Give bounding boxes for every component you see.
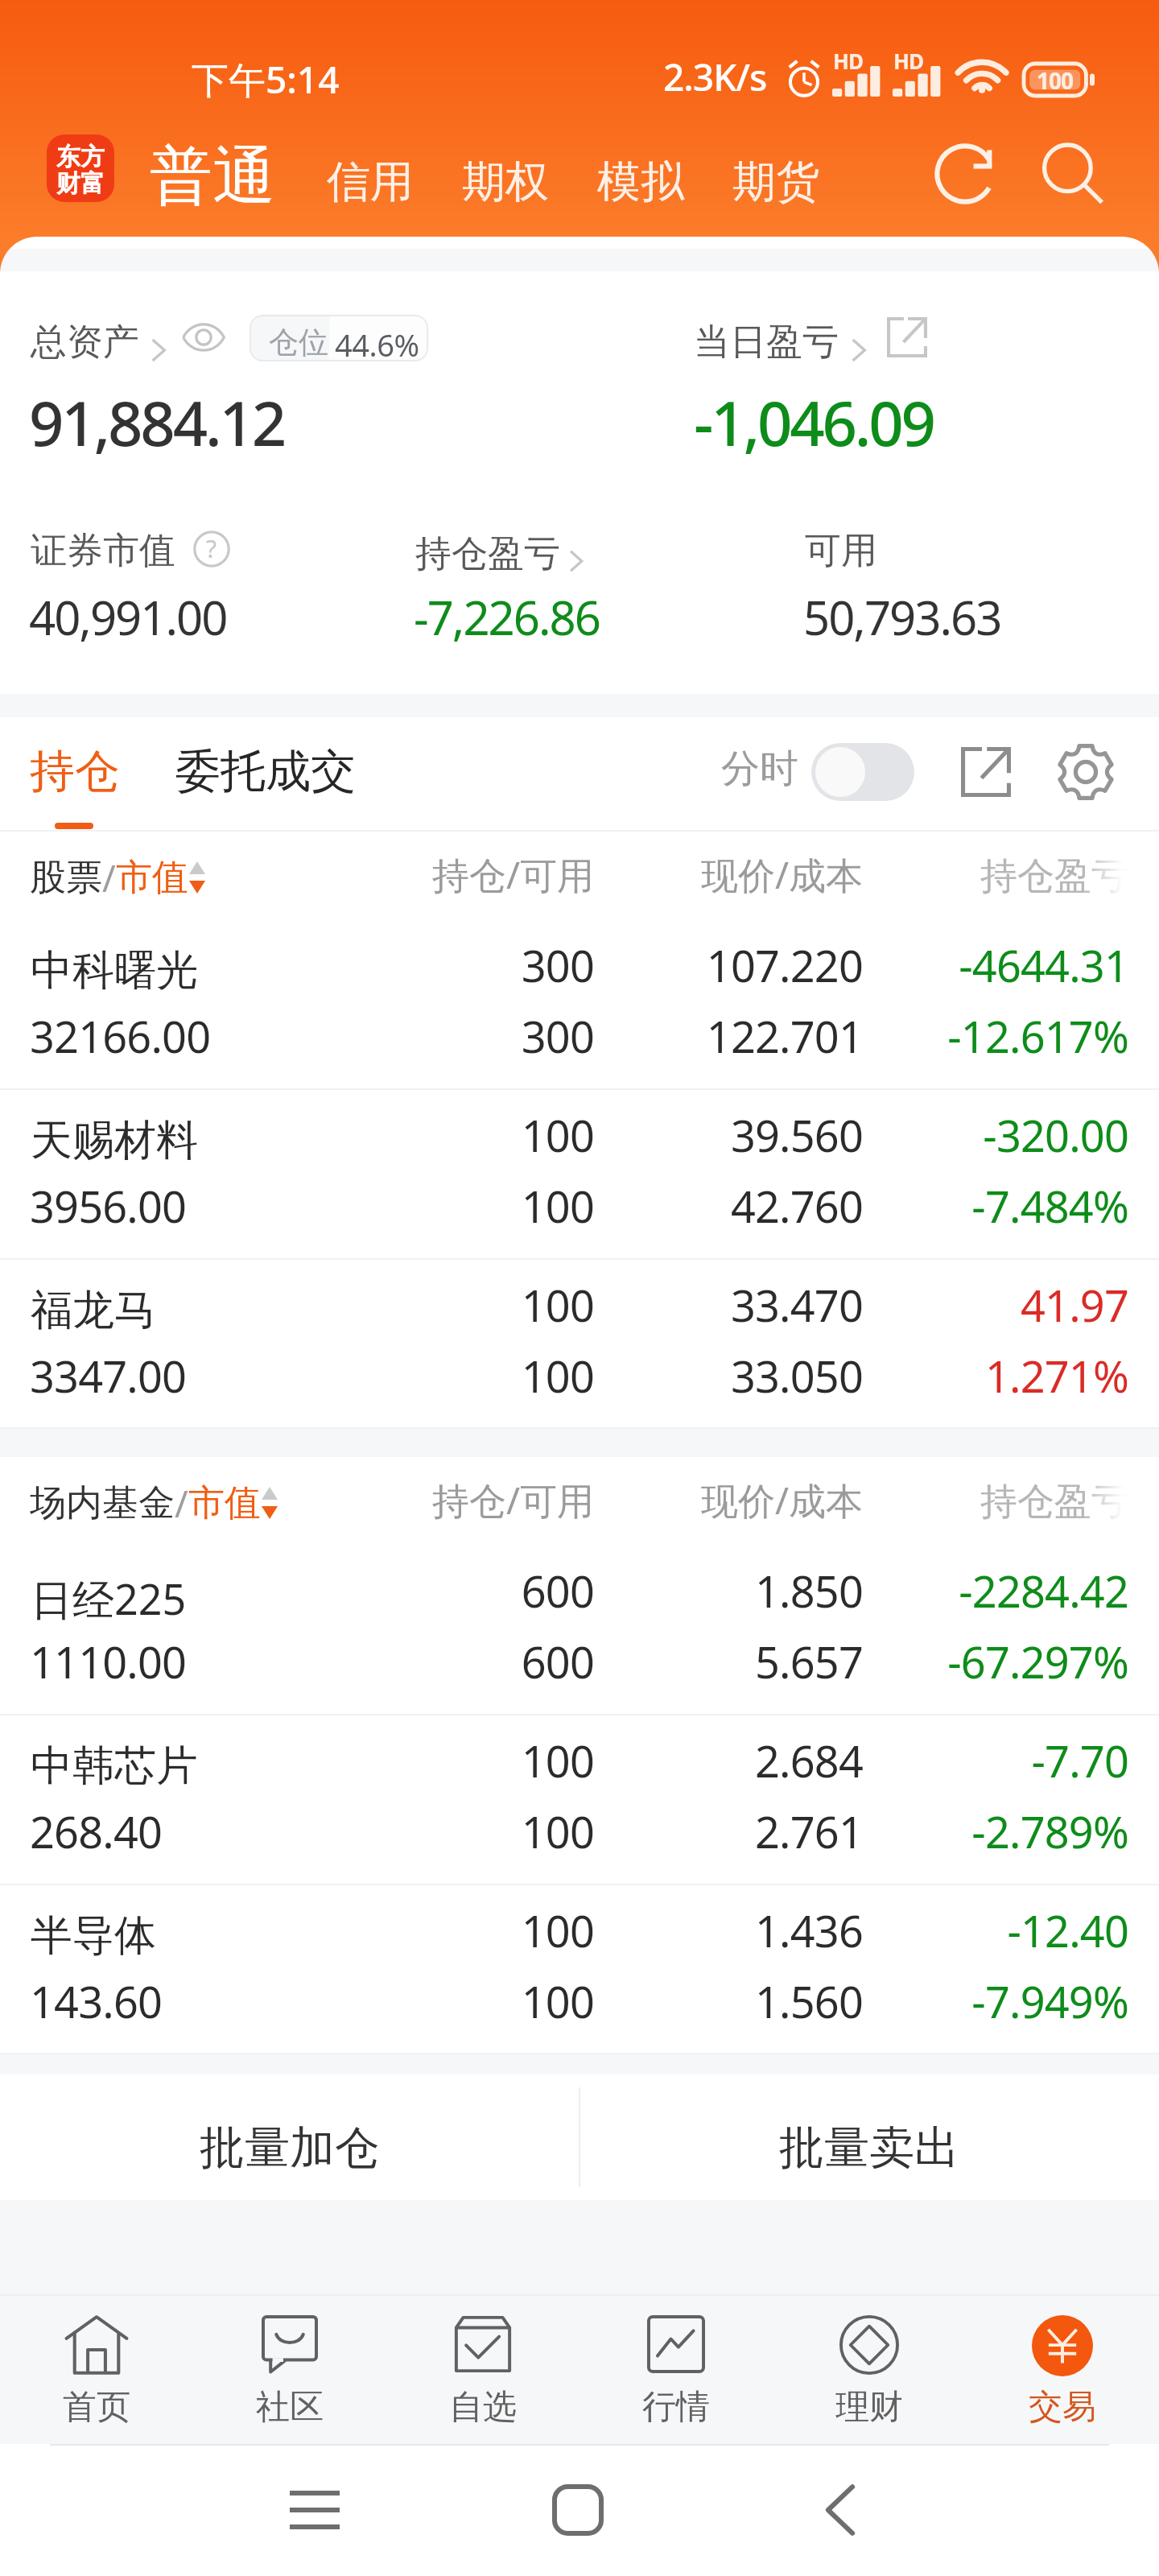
- button[interactable]: 日经225: [0, 1546, 1159, 1715]
- button[interactable]: 批量卖出: [579, 2074, 1159, 2200]
- button[interactable]: 分时: [721, 745, 798, 793]
- button[interactable]: Home: [530, 2462, 626, 2558]
- staticText: 中科曙光: [31, 944, 198, 997]
- button[interactable]: 行情: [579, 2294, 773, 2444]
- button[interactable]: 仓位: [250, 315, 428, 361]
- staticText: 5.657: [0, 1632, 863, 1691]
- staticText: -4644.31: [0, 935, 1128, 995]
- staticText: -7.484%: [0, 1176, 1128, 1236]
- staticText: 批量加仓: [200, 2120, 380, 2177]
- button[interactable]: 证券市值说明: [184, 521, 240, 577]
- staticText: 50,793.63: [803, 585, 1001, 649]
- button[interactable]: 天赐材料: [0, 1090, 1159, 1260]
- staticText: 批量卖出: [779, 2120, 959, 2177]
- button[interactable]: 中韩芯片: [0, 1715, 1159, 1885]
- staticText: 1.436: [0, 1901, 863, 1960]
- button[interactable]: Recents: [266, 2462, 363, 2558]
- staticText: 首页: [63, 2386, 130, 2429]
- staticText: 3956.00: [30, 1176, 187, 1236]
- button[interactable]: 中科曙光: [0, 920, 1159, 1090]
- staticText: 100: [0, 1176, 594, 1236]
- staticText: 2.3K/s: [663, 52, 767, 102]
- staticText: 持仓盈亏: [0, 1479, 1128, 1525]
- button[interactable]: 信用: [327, 155, 414, 209]
- button[interactable]: 委托成交: [175, 743, 356, 800]
- button[interactable]: 隐藏金额: [172, 312, 235, 363]
- staticText: 42.760: [0, 1176, 863, 1236]
- staticText: 3347.00: [30, 1346, 187, 1406]
- button[interactable]: 模拟: [597, 155, 684, 209]
- staticText: 1.560: [0, 1971, 863, 2031]
- staticText: 理财: [835, 2386, 903, 2429]
- button[interactable]: 设置: [1049, 741, 1123, 803]
- staticText: 证券市值: [31, 528, 175, 574]
- button[interactable]: 交易: [966, 2294, 1159, 2444]
- staticText: 当日盈亏: [694, 320, 839, 365]
- staticText: 分时: [721, 745, 798, 793]
- staticText: 100: [0, 1275, 594, 1335]
- button[interactable]: 半导体: [0, 1885, 1159, 2054]
- button[interactable]: 当日盈亏: [692, 312, 863, 363]
- button[interactable]: 自选: [386, 2294, 579, 2444]
- button[interactable]: 持仓盈亏: [414, 524, 583, 576]
- button[interactable]: 持仓: [30, 743, 120, 800]
- staticText: 场内基金: [30, 1480, 175, 1526]
- button[interactable]: 搜索: [1032, 134, 1112, 215]
- button[interactable]: 社区: [193, 2294, 386, 2444]
- staticText: 1.850: [0, 1561, 863, 1620]
- staticText: 33.470: [0, 1275, 863, 1335]
- button[interactable]: 场内基金: [30, 1479, 278, 1528]
- staticText: 现价/成本: [0, 1475, 863, 1525]
- button[interactable]: 东方财富: [47, 134, 114, 202]
- staticText: -7.70: [0, 1731, 1128, 1790]
- staticText: -67.297%: [0, 1632, 1128, 1691]
- staticText: 仓位: [269, 324, 328, 361]
- button[interactable]: 总资产: [29, 312, 163, 363]
- button[interactable]: 理财: [773, 2294, 966, 2444]
- button[interactable]: 分享: [949, 743, 1023, 801]
- staticText: 2.761: [0, 1802, 863, 1861]
- staticText: 持仓盈亏: [415, 531, 560, 577]
- staticText: 41.97: [0, 1275, 1128, 1335]
- staticText: 300: [0, 1006, 594, 1066]
- button[interactable]: 期货: [732, 155, 819, 209]
- staticText: 可用: [805, 528, 877, 574]
- staticText: 1.271%: [0, 1346, 1128, 1406]
- button[interactable]: 刷新: [927, 134, 1008, 214]
- button[interactable]: 分时开关: [811, 743, 914, 801]
- staticText: 91,884.12: [29, 381, 284, 464]
- staticText: 100: [0, 1731, 594, 1790]
- staticText: 100: [0, 1346, 594, 1406]
- staticText: 持仓: [30, 743, 120, 800]
- staticText: 行情: [642, 2386, 710, 2429]
- staticText: -12.617%: [0, 1006, 1128, 1066]
- staticText: 1110.00: [30, 1632, 187, 1691]
- button[interactable]: 批量加仓: [0, 2074, 579, 2200]
- staticText: 中韩芯片: [31, 1740, 198, 1793]
- staticText: /: [102, 853, 116, 902]
- staticText: 2.684: [0, 1731, 863, 1790]
- staticText: 持仓/可用: [0, 1475, 594, 1525]
- staticText: 市值: [188, 1480, 261, 1526]
- staticText: 600: [0, 1632, 594, 1691]
- staticText: 现价/成本: [0, 849, 863, 900]
- button[interactable]: 普通: [150, 137, 275, 216]
- staticText: -2.789%: [0, 1802, 1128, 1861]
- staticText: 300: [0, 935, 594, 995]
- staticText: 总资产: [31, 320, 139, 365]
- button[interactable]: 股票: [30, 853, 205, 902]
- staticText: 122.701: [0, 1006, 863, 1066]
- staticText: 委托成交: [175, 743, 356, 800]
- button[interactable]: 首页: [0, 2294, 193, 2444]
- staticText: 交易: [1029, 2386, 1096, 2429]
- staticText: 32166.00: [30, 1006, 211, 1066]
- staticText: 信用: [327, 155, 414, 209]
- button[interactable]: 福龙马: [0, 1260, 1159, 1429]
- button[interactable]: 期权: [462, 155, 549, 209]
- staticText: 600: [0, 1561, 594, 1620]
- staticText: 持仓盈亏: [0, 853, 1128, 900]
- staticText: 天赐材料: [31, 1114, 198, 1167]
- button[interactable]: 分享当日盈亏: [877, 308, 937, 366]
- staticText: -1,046.09: [694, 381, 934, 464]
- button[interactable]: Back: [792, 2462, 889, 2558]
